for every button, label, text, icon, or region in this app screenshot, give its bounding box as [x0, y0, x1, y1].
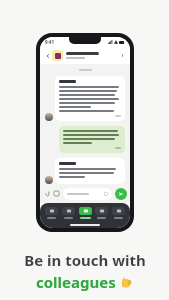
staticText: 9:41: [45, 39, 54, 45]
button[interactable]: More options: [118, 51, 127, 60]
button[interactable]: [59, 126, 125, 153]
staticText: colleagues: [36, 272, 116, 292]
button[interactable]: Send message: [115, 188, 127, 200]
button[interactable]: [55, 76, 125, 121]
staticText: Be in touch with: [24, 250, 146, 270]
button[interactable]: Tasks: [62, 207, 75, 219]
button[interactable]: [63, 188, 112, 200]
button[interactable]: Add attachment: [52, 189, 61, 198]
button[interactable]: Documents: [95, 207, 108, 219]
button[interactable]: Chat: [79, 207, 92, 219]
button[interactable]: [55, 158, 125, 184]
button[interactable]: Attach file: [43, 189, 52, 198]
button[interactable]: Back: [43, 51, 52, 60]
button[interactable]: Calendar: [112, 207, 125, 219]
button[interactable]: Home: [45, 207, 58, 219]
